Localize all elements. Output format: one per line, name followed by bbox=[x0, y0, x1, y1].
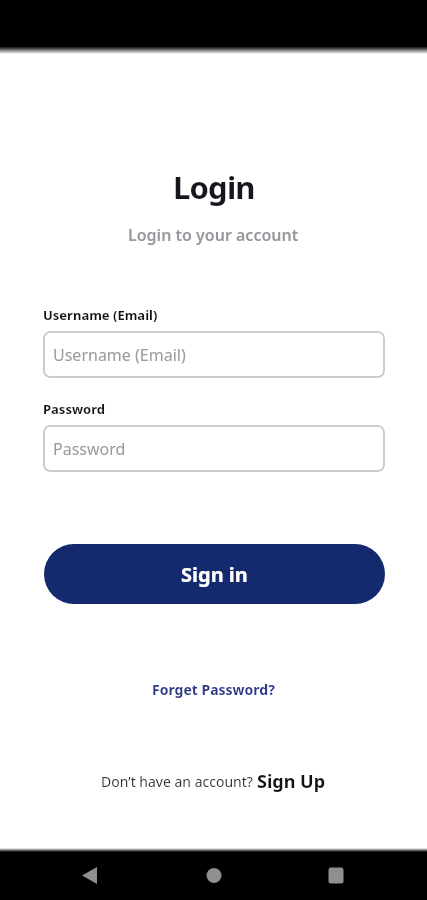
button[interactable]: Password bbox=[43, 425, 385, 472]
button[interactable] bbox=[0, 852, 143, 900]
button[interactable] bbox=[143, 852, 285, 900]
staticText: Username (Email) bbox=[53, 344, 186, 366]
staticText: Login bbox=[173, 166, 255, 206]
button[interactable]: Sign Up bbox=[257, 769, 326, 794]
button[interactable]: Forget Password? bbox=[152, 680, 275, 699]
staticText: Password bbox=[43, 400, 105, 418]
button[interactable] bbox=[285, 852, 427, 900]
staticText: Sign Up bbox=[257, 769, 326, 794]
staticText: Forget Password? bbox=[152, 680, 275, 699]
staticText: Sign in bbox=[181, 561, 248, 588]
button[interactable]: Username (Email) bbox=[43, 331, 385, 378]
staticText: Don’t have an account? bbox=[101, 772, 257, 791]
staticText: Login to your account bbox=[128, 224, 299, 246]
staticText: Password bbox=[53, 438, 126, 460]
staticText: Username (Email) bbox=[43, 306, 158, 324]
button[interactable]: Sign in bbox=[44, 544, 385, 604]
